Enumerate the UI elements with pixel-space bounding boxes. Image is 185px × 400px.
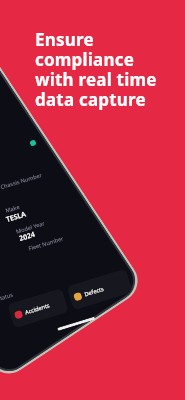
staticText: Model Year <box>15 219 46 236</box>
staticText: Ensure compliance with real time data ca… <box>35 28 157 111</box>
staticText: Fleet Number <box>28 234 64 253</box>
staticText: Chassis Number <box>0 171 43 191</box>
button[interactable]: Defects <box>66 268 133 310</box>
staticText: TESLA <box>5 209 28 225</box>
button[interactable]: Vehicle status <box>29 139 37 147</box>
staticText: Accidents <box>24 301 51 316</box>
button[interactable]: Accidents <box>7 288 69 329</box>
staticText: Status <box>0 290 15 303</box>
staticText: 2024 <box>18 229 37 244</box>
staticText: Defects <box>83 285 105 298</box>
staticText: Make <box>4 203 21 215</box>
